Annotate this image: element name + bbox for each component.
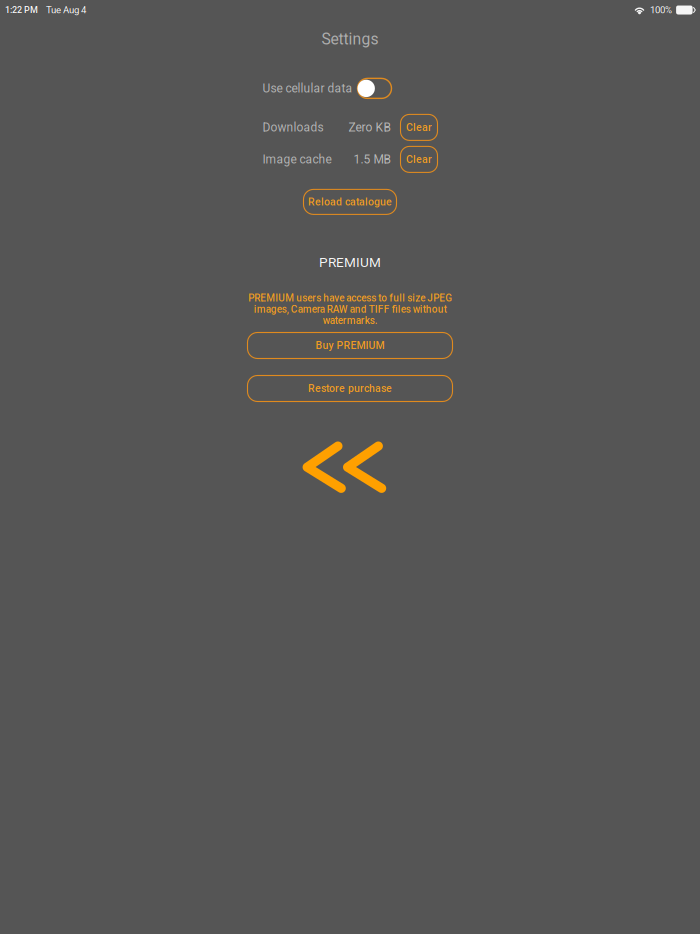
staticText: Zero KB bbox=[348, 120, 390, 134]
button[interactable]: Restore purchase bbox=[247, 375, 452, 401]
staticText: Image cache bbox=[262, 152, 331, 166]
staticText: Reload catalogue bbox=[308, 196, 392, 208]
button[interactable]: Reload catalogue bbox=[303, 189, 396, 214]
button[interactable]: Back bbox=[303, 441, 383, 493]
button[interactable]: Clear bbox=[400, 114, 437, 140]
staticText: Restore purchase bbox=[308, 382, 392, 395]
staticText: Buy PREMIUM bbox=[315, 339, 384, 352]
staticText: Settings bbox=[321, 30, 378, 48]
button[interactable]: Use cellular data bbox=[357, 78, 391, 98]
staticText: 1.5 MB bbox=[353, 152, 390, 166]
button[interactable]: Buy PREMIUM bbox=[247, 332, 452, 358]
button[interactable]: Clear bbox=[400, 146, 437, 172]
staticText: Tue Aug 4 bbox=[46, 4, 86, 16]
staticText: Clear bbox=[406, 121, 432, 134]
staticText: 100% bbox=[650, 4, 672, 16]
staticText: PREMIUM users have access to full size J… bbox=[248, 292, 452, 326]
staticText: PREMIUM bbox=[319, 254, 381, 270]
staticText: Use cellular data bbox=[262, 81, 352, 95]
staticText: 1:22 PM bbox=[5, 5, 38, 15]
staticText: Downloads bbox=[262, 120, 323, 134]
staticText: Clear bbox=[406, 153, 432, 166]
